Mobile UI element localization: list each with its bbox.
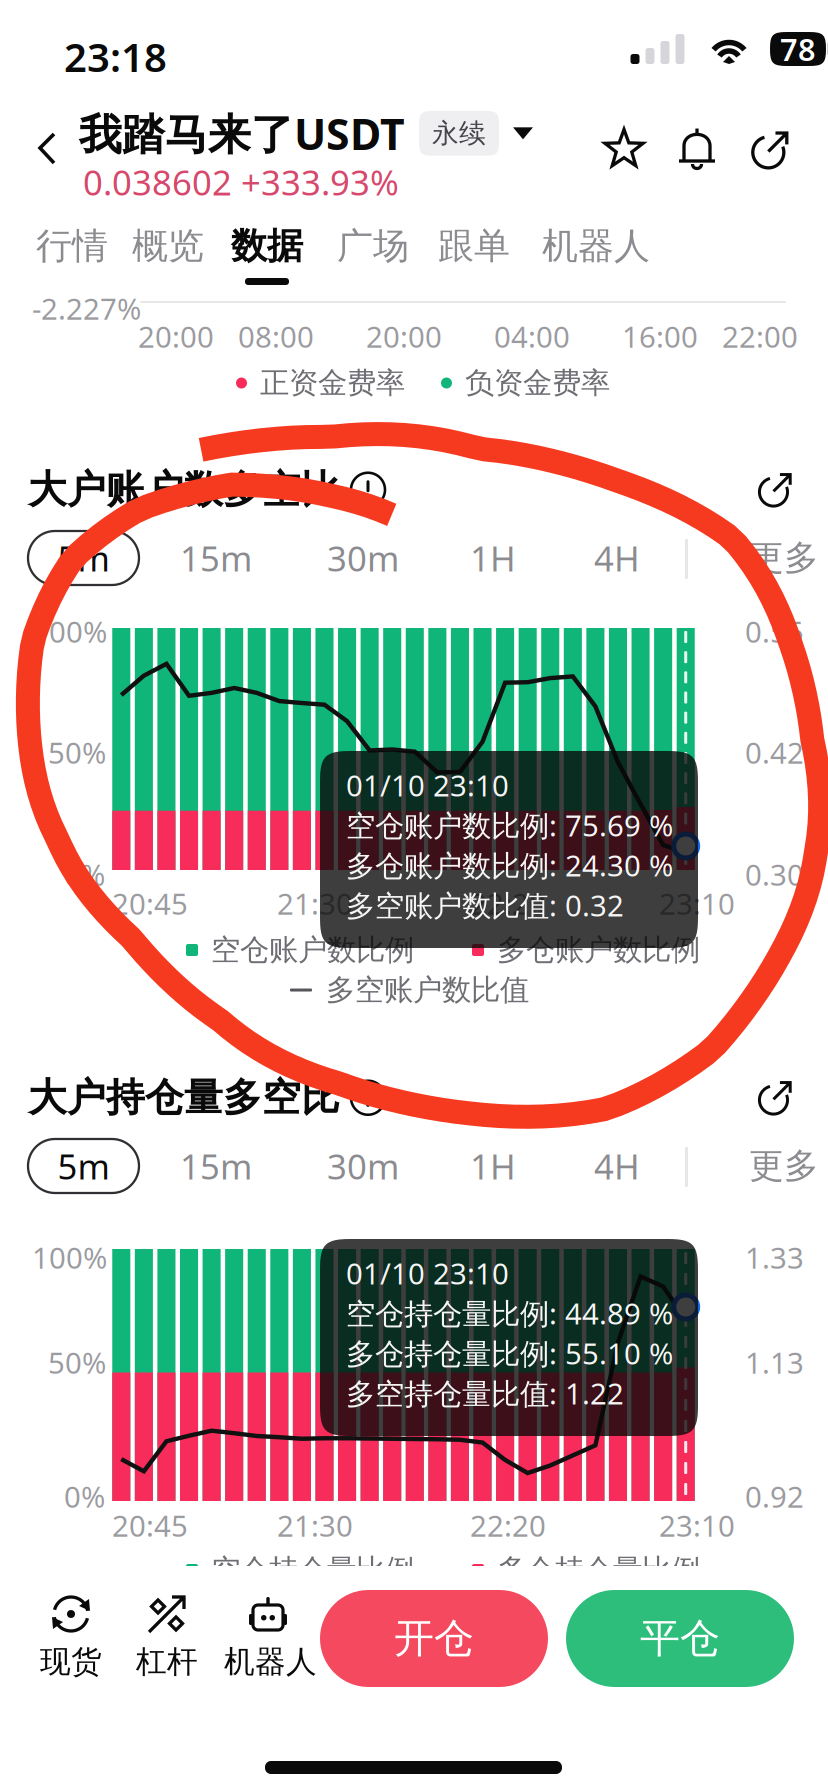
staticText: 22:20 <box>470 884 546 923</box>
staticText: 多空账户数比值: 0.32 <box>346 885 624 924</box>
staticText: 20:00 <box>138 317 214 356</box>
staticText: 正资金费率 <box>260 365 405 401</box>
staticText: 平仓 <box>640 1614 720 1663</box>
staticText: 21:30 <box>277 1506 353 1545</box>
staticText: 现货 <box>40 1643 102 1681</box>
staticText: 广场 <box>337 224 409 268</box>
staticText: 空仓持仓量比例 <box>211 1552 414 1588</box>
button[interactable]: 杠杆 <box>118 1586 216 1690</box>
staticText: 多空持仓量比值: 1.22 <box>346 1373 624 1412</box>
staticText: 16:00 <box>622 317 698 356</box>
staticText: 1.13 <box>745 1343 804 1382</box>
staticText: 15m <box>180 535 252 581</box>
button[interactable]: 机器人 <box>530 218 654 294</box>
button[interactable]: 广场 <box>325 218 422 294</box>
staticText: 15m <box>180 1143 252 1189</box>
staticText: 0.55 <box>745 612 804 651</box>
staticText: 30m <box>327 1143 399 1189</box>
staticText: 0.42 <box>745 733 804 772</box>
button[interactable]: 更多 <box>749 531 828 585</box>
staticText: 空仓账户数比例: 75.69 % <box>346 805 673 844</box>
button[interactable]: 开仓 <box>320 1590 548 1687</box>
staticText: 20:45 <box>112 884 188 923</box>
staticText: 开仓 <box>394 1614 474 1663</box>
staticText: 大户账户数多空比 <box>28 466 340 513</box>
button[interactable]: 跟单 <box>426 218 522 294</box>
button[interactable]: 30m <box>311 531 415 585</box>
staticText: 22:00 <box>722 317 798 356</box>
button[interactable]: 30m <box>311 1139 415 1193</box>
button[interactable]: 概览 <box>120 218 219 294</box>
staticText: 我踏马来了USDT <box>79 105 405 162</box>
staticText: 空仓持仓量比例: 44.89 % <box>346 1293 673 1332</box>
button[interactable]: 4H <box>576 1139 658 1193</box>
staticText: 5m <box>57 1143 109 1189</box>
button[interactable]: 5m <box>28 531 139 585</box>
staticText: 更多 <box>749 1145 819 1187</box>
staticText: 23:18 <box>64 30 167 83</box>
staticText: 23:10 <box>659 884 735 923</box>
staticText: 多仓持仓量比例: 55.10 % <box>346 1333 673 1372</box>
staticText: 跟单 <box>438 224 510 268</box>
button[interactable]: 15m <box>164 1139 268 1193</box>
button[interactable]: 更多 <box>749 1139 828 1193</box>
staticText: 空仓账户数比例 <box>211 932 414 968</box>
staticText: 0% <box>64 1477 105 1516</box>
staticText: 数据 <box>231 224 303 268</box>
button[interactable]: 数据 <box>219 218 315 294</box>
staticText: 概览 <box>132 224 204 268</box>
staticText: 杠杆 <box>136 1643 198 1681</box>
staticText: 50% <box>48 1343 106 1382</box>
staticText: 多空账户数比值 <box>326 972 529 1008</box>
staticText: 1.33 <box>745 1238 804 1277</box>
button[interactable]: 15m <box>164 531 268 585</box>
staticText: 100% <box>32 1238 107 1277</box>
staticText: 永续 <box>432 117 486 150</box>
staticText: 5m <box>57 535 109 581</box>
staticText: 01/10 23:10 <box>346 765 509 804</box>
button[interactable]: Share <box>735 115 805 185</box>
staticText: 08:00 <box>238 317 314 356</box>
button[interactable]: Favourite <box>589 115 659 185</box>
button[interactable]: Back <box>12 114 78 190</box>
staticText: 大户持仓量多空比 <box>28 1074 340 1121</box>
staticText: 100% <box>32 612 107 651</box>
staticText: 多仓账户数比例: 24.30 % <box>346 845 673 884</box>
staticText: 20:00 <box>366 317 442 356</box>
button[interactable]: 现货 <box>22 1586 120 1690</box>
staticText: 机器人 <box>542 224 650 268</box>
staticText: 0.30 <box>745 855 804 894</box>
staticText: 1H <box>470 1143 516 1189</box>
staticText: 0.92 <box>745 1477 804 1516</box>
staticText: 23:10 <box>659 1506 735 1545</box>
button[interactable]: 1H <box>452 1139 534 1193</box>
button[interactable]: 行情 <box>24 218 120 294</box>
staticText: 4H <box>594 535 640 581</box>
staticText: -2.227% <box>32 289 141 328</box>
button[interactable]: 4H <box>576 531 658 585</box>
button[interactable]: Price alert <box>662 115 732 185</box>
staticText: 04:00 <box>494 317 570 356</box>
staticText: 更多 <box>749 537 819 579</box>
staticText: 20:45 <box>112 1506 188 1545</box>
staticText: 78 <box>780 29 816 69</box>
button[interactable]: 1H <box>452 531 534 585</box>
button[interactable]: 5m <box>28 1139 139 1193</box>
staticText: 行情 <box>36 224 108 268</box>
staticText: 多仓账户数比例 <box>497 932 700 968</box>
button[interactable]: 机器人 <box>212 1586 324 1690</box>
button[interactable]: Open full chart <box>744 1072 808 1128</box>
staticText: 负资金费率 <box>465 365 610 401</box>
staticText: 0.038602 +333.93% <box>83 159 399 205</box>
staticText: 0% <box>64 855 105 894</box>
button[interactable]: 平仓 <box>566 1590 794 1687</box>
staticText: 4H <box>594 1143 640 1189</box>
staticText: 1H <box>470 535 516 581</box>
staticText: 多仓持仓量比例 <box>497 1552 700 1588</box>
staticText: 21:30 <box>277 884 353 923</box>
button[interactable]: Open full chart <box>744 464 808 520</box>
staticText: 机器人 <box>224 1643 317 1681</box>
staticText: 50% <box>48 733 106 772</box>
staticText: 30m <box>327 535 399 581</box>
staticText: 22:20 <box>470 1506 546 1545</box>
